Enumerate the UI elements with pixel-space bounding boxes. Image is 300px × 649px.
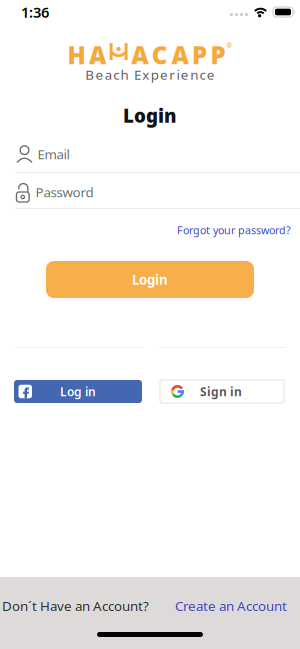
staticText: P (211, 39, 226, 71)
button[interactable]: Forgot your password? (177, 223, 291, 237)
staticText: Log in (60, 383, 96, 399)
staticText: Forgot your password? (177, 223, 291, 237)
staticText: Login (123, 103, 177, 128)
staticText: Login (132, 271, 168, 288)
staticText: x (142, 66, 149, 83)
button[interactable]: Password (0, 182, 300, 209)
button[interactable]: Sign in (160, 380, 284, 403)
button[interactable]: Create an Account (175, 597, 287, 615)
staticText: P (192, 39, 207, 71)
button[interactable]: Log in (14, 380, 142, 403)
staticText: E (134, 66, 141, 83)
staticText: e (181, 66, 189, 83)
staticText: e (160, 66, 168, 83)
staticText: r (169, 66, 175, 83)
staticText: H (67, 39, 85, 71)
button[interactable]: Email (0, 145, 300, 173)
staticText: p (151, 66, 159, 83)
staticText: A (89, 39, 106, 71)
button[interactable]: Login (46, 261, 254, 298)
staticText: Email (37, 145, 69, 163)
staticText: c (113, 66, 119, 83)
staticText: c (199, 66, 205, 83)
staticText: Don´t Have an Account? (2, 597, 149, 615)
staticText: e (95, 66, 103, 83)
staticText: h (120, 66, 128, 83)
staticText: e (207, 66, 215, 83)
staticText: n (190, 66, 198, 83)
staticText: Password (35, 183, 93, 201)
staticText: i (176, 66, 179, 83)
staticText: ® (227, 41, 233, 50)
staticText: A (131, 39, 148, 71)
staticText: 1:36 (21, 2, 49, 22)
staticText: B (85, 66, 94, 83)
staticText: a (105, 66, 112, 83)
staticText: Create an Account (175, 597, 287, 615)
staticText: A (171, 39, 188, 71)
staticText: Sign in (200, 383, 242, 399)
staticText: C (152, 39, 168, 71)
